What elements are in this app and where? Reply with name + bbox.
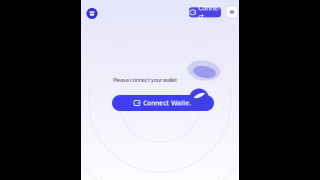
staticText: Connect Wallet [143, 99, 192, 107]
staticText: Connect [198, 3, 220, 21]
button[interactable]: Connect Wallet [112, 95, 214, 111]
button[interactable]: Menu [225, 5, 238, 18]
button[interactable]: Home [85, 6, 99, 20]
staticText: Please connect your wallet [113, 76, 177, 84]
button[interactable]: Connect [189, 7, 221, 17]
